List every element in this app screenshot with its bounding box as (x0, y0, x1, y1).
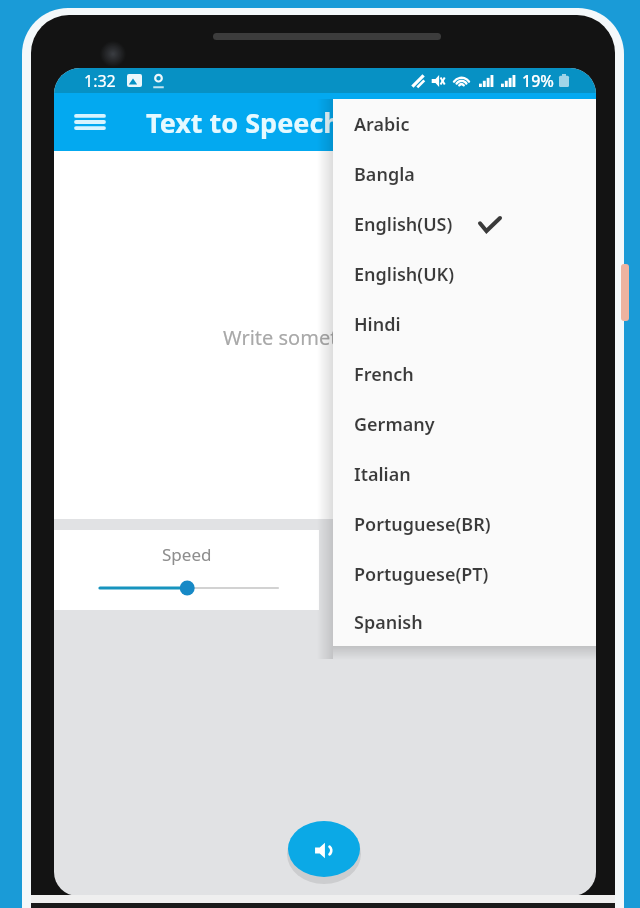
button[interactable]: Speak (284, 818, 364, 882)
staticText: Write something here (223, 324, 428, 351)
staticText: Bangla (354, 162, 415, 187)
staticText: Germany (354, 412, 435, 437)
button[interactable]: French (333, 349, 596, 399)
button[interactable]: English(US) (333, 199, 596, 249)
staticText: Hindi (354, 312, 401, 337)
button[interactable]: Bangla (333, 149, 596, 199)
staticText: English(US) (354, 212, 453, 237)
staticText: Text to Speech (146, 104, 341, 141)
button[interactable]: Hindi (333, 299, 596, 349)
staticText: Italian (354, 462, 411, 487)
staticText: Speed (162, 543, 212, 566)
staticText: Portuguese(PT) (354, 562, 489, 587)
staticText: Portuguese(BR) (354, 512, 491, 537)
staticText: Arabic (354, 112, 410, 137)
button[interactable]: Portuguese(BR) (333, 499, 596, 549)
staticText: English(UK) (354, 262, 455, 287)
staticText: Spanish (354, 610, 423, 635)
button[interactable]: Italian (333, 449, 596, 499)
staticText: 19% (522, 70, 554, 92)
button[interactable]: Germany (333, 399, 596, 449)
button[interactable]: Spanish (333, 599, 596, 646)
button[interactable]: Open navigation menu (66, 98, 114, 146)
button[interactable]: Arabic (333, 99, 596, 149)
staticText: 1:32 (84, 70, 116, 92)
button[interactable]: English(UK) (333, 249, 596, 299)
button[interactable]: Portuguese(PT) (333, 549, 596, 599)
staticText: French (354, 362, 414, 387)
